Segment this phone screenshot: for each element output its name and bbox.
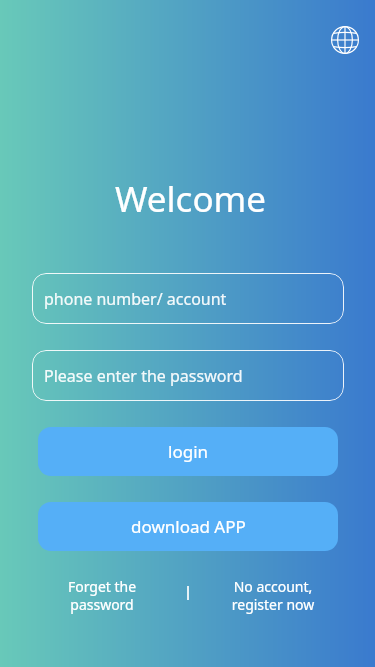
button[interactable]: Language <box>331 26 359 54</box>
button[interactable]: No account, register now <box>190 577 375 614</box>
staticText: Please enter the password <box>44 365 243 387</box>
staticText: download APP <box>131 515 246 538</box>
button[interactable]: login <box>38 427 338 476</box>
staticText: Welcome <box>3 175 375 223</box>
staticText: No account, register now <box>229 577 317 614</box>
button[interactable]: Forget the password <box>0 577 188 614</box>
staticText: Forget the password <box>65 577 139 614</box>
button[interactable]: Please enter the password <box>32 350 344 401</box>
button[interactable]: download APP <box>38 502 338 551</box>
staticText: login <box>168 440 209 463</box>
staticText: phone number/ account <box>44 288 227 310</box>
button[interactable]: phone number/ account <box>32 273 344 324</box>
